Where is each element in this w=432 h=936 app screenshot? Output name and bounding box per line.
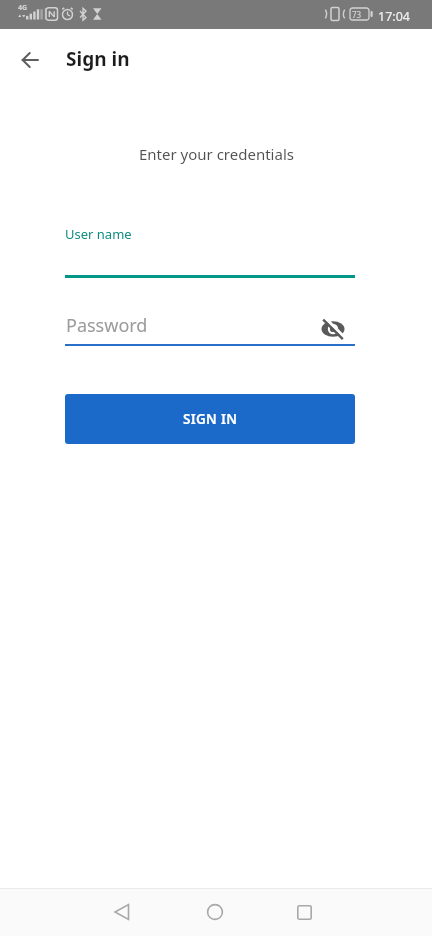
button[interactable]	[309, 305, 357, 353]
staticText: User name	[65, 225, 132, 243]
button[interactable]	[6, 36, 54, 84]
staticText: Sign in	[66, 46, 130, 72]
button[interactable]	[191, 888, 239, 936]
staticText: 73	[352, 9, 362, 20]
button[interactable]	[65, 240, 355, 278]
staticText: Password	[66, 313, 148, 338]
button[interactable]	[98, 888, 146, 936]
button[interactable]	[65, 308, 355, 346]
staticText: 17:04	[378, 8, 410, 25]
staticText: SIGN IN	[183, 410, 238, 428]
staticText: Enter your credentials	[139, 144, 294, 164]
staticText: 4G	[18, 3, 28, 13]
button[interactable]: SIGN IN	[65, 394, 355, 444]
button[interactable]	[280, 888, 328, 936]
